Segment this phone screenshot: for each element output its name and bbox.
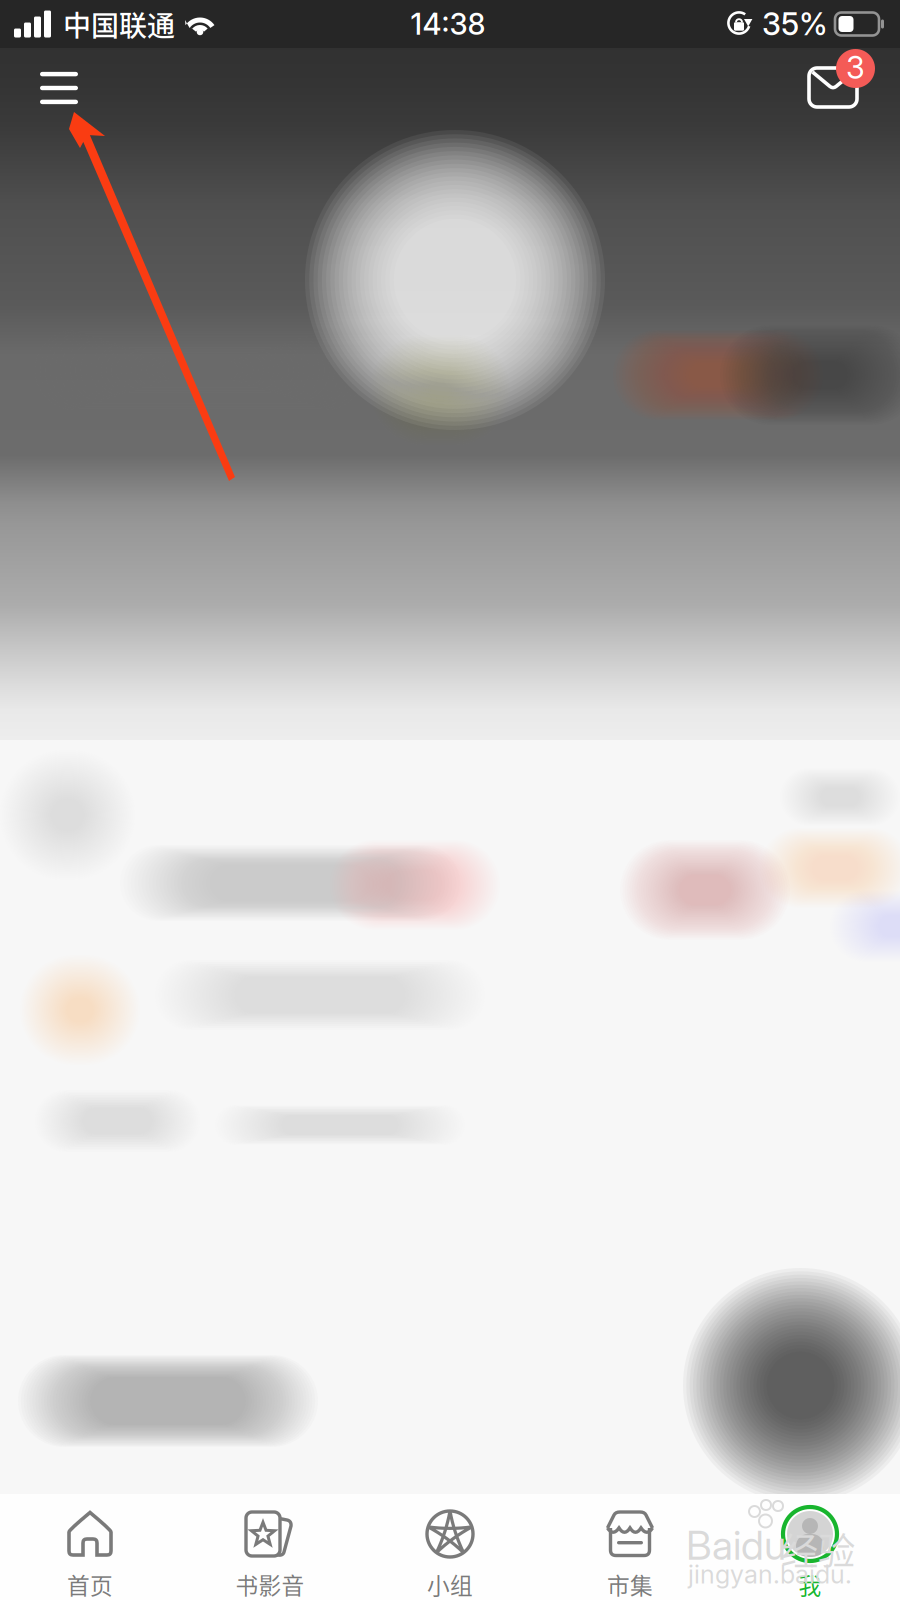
staticText: 市集 <box>607 1568 653 1600</box>
staticText: 我 <box>798 1568 821 1600</box>
staticText: 小组 <box>427 1568 473 1600</box>
button[interactable]: Menu <box>0 48 104 128</box>
staticText: 首页 <box>67 1568 113 1600</box>
staticText: 中国联通 <box>63 4 175 44</box>
staticText: Baidu <box>686 1521 786 1569</box>
button[interactable]: 首页 <box>0 1494 180 1600</box>
button[interactable]: 小组 <box>360 1494 540 1600</box>
button[interactable]: 书影音 <box>180 1494 360 1600</box>
staticText: 35% <box>762 5 828 42</box>
button[interactable]: Messages <box>801 49 893 127</box>
staticText: 3 <box>846 49 865 86</box>
button[interactable]: 我 <box>720 1494 900 1600</box>
staticText: 经验 <box>781 1522 855 1576</box>
staticText: jingyan.baidu.com <box>688 1559 852 1600</box>
staticText: 14:38 <box>410 6 485 42</box>
staticText: 书影音 <box>235 1568 304 1600</box>
button[interactable]: 市集 <box>540 1494 720 1600</box>
